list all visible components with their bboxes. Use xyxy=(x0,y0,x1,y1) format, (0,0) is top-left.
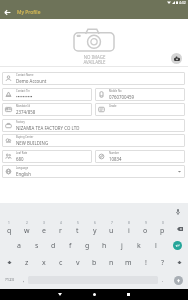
staticText: 3 xyxy=(43,221,45,225)
staticText: k xyxy=(137,241,141,251)
button[interactable]: j xyxy=(113,237,130,254)
button[interactable]: Home xyxy=(77,289,111,300)
button[interactable]: 4 xyxy=(52,220,69,237)
button[interactable]: z xyxy=(18,254,35,271)
staticText: NEW BUILDING xyxy=(16,140,49,146)
button[interactable]: Voice input xyxy=(174,208,182,216)
staticText: d xyxy=(51,241,56,251)
button[interactable]: Mobile No xyxy=(95,88,185,101)
staticText: NO IMAGE AVAILABLE xyxy=(83,54,106,65)
staticText: Demo Account xyxy=(16,78,47,84)
button[interactable]: 0 xyxy=(154,220,171,237)
button[interactable]: ! xyxy=(137,254,154,271)
staticText: ?123 xyxy=(5,277,15,283)
button[interactable]: b xyxy=(86,254,103,271)
staticText: z xyxy=(25,258,29,268)
button[interactable]: 8 xyxy=(120,220,137,237)
staticText: 0760700459 xyxy=(109,94,135,100)
staticText: j xyxy=(121,241,123,251)
staticText: c xyxy=(59,258,63,268)
button[interactable]: Enter xyxy=(167,237,188,254)
button[interactable]: Delete xyxy=(171,254,188,271)
button[interactable]: Buying Center xyxy=(2,134,185,147)
staticText: ! xyxy=(145,258,147,268)
button[interactable]: 7 xyxy=(103,220,120,237)
button[interactable]: Shift xyxy=(0,254,18,271)
staticText: 2 xyxy=(26,221,28,225)
button[interactable]: Mandate Id xyxy=(2,103,92,116)
staticText: b xyxy=(92,258,97,268)
staticText: 0 xyxy=(162,221,164,225)
staticText: 5 xyxy=(77,221,79,225)
staticText: Language xyxy=(16,166,29,170)
staticText: 680 xyxy=(16,156,24,162)
button[interactable]: Back xyxy=(43,289,77,300)
staticText: h xyxy=(102,241,107,251)
button[interactable]: k xyxy=(130,237,147,254)
staticText: Buying Center xyxy=(16,135,34,139)
button[interactable]: Contact Name xyxy=(2,72,185,85)
staticText: NIZAMIA TEA FACTORY CO LTD xyxy=(16,125,80,131)
staticText: 4 xyxy=(60,221,62,225)
button[interactable]: Grade xyxy=(95,103,185,116)
button[interactable]: Factory xyxy=(2,119,185,132)
button[interactable]: Enter xyxy=(168,271,188,289)
button[interactable]: l xyxy=(147,237,164,254)
button[interactable]: 2 xyxy=(18,220,35,237)
staticText: 7 xyxy=(111,221,113,225)
button[interactable]: 9 xyxy=(137,220,154,237)
staticText: Contact Name xyxy=(16,73,34,77)
button[interactable]: Take photo xyxy=(171,53,182,64)
staticText: ? xyxy=(161,258,165,268)
staticText: 6 xyxy=(94,221,96,225)
staticText: 1 xyxy=(8,221,10,225)
staticText: w xyxy=(24,226,30,236)
button[interactable]: m xyxy=(120,254,137,271)
button[interactable]: c xyxy=(52,254,69,271)
staticText: e xyxy=(42,226,46,236)
button[interactable]: Recents xyxy=(111,289,145,300)
staticText: Number xyxy=(109,151,120,155)
button[interactable]: Contact Tin xyxy=(2,88,92,101)
staticText: My Profile xyxy=(17,9,41,16)
staticText: 4:32 xyxy=(179,0,186,5)
button[interactable]: Language xyxy=(2,165,185,178)
staticText: q xyxy=(7,226,12,236)
button[interactable]: n xyxy=(103,254,120,271)
button[interactable]: Back xyxy=(0,5,14,19)
staticText: f xyxy=(69,241,72,251)
button[interactable]: Backspace xyxy=(171,220,188,237)
staticText: u xyxy=(109,226,114,236)
staticText: g xyxy=(85,241,90,251)
staticText: 9 xyxy=(145,221,147,225)
staticText: r xyxy=(59,226,62,236)
button[interactable]: 5 xyxy=(69,220,86,237)
button[interactable]: h xyxy=(96,237,113,254)
button[interactable]: f xyxy=(62,237,79,254)
staticText: Grade xyxy=(109,104,117,108)
staticText: a xyxy=(17,241,21,251)
staticText: p xyxy=(160,226,165,236)
staticText: 8 xyxy=(128,221,130,225)
button[interactable]: ?123 xyxy=(0,271,20,289)
staticText: English xyxy=(16,171,31,177)
button[interactable]: 3 xyxy=(35,220,52,237)
button[interactable]: 6 xyxy=(86,220,103,237)
button[interactable]: v xyxy=(69,254,86,271)
button[interactable]: d xyxy=(45,237,62,254)
button[interactable]: ? xyxy=(154,254,171,271)
staticText: •••••••••• xyxy=(16,94,33,100)
button[interactable]: , xyxy=(20,271,28,289)
button[interactable]: g xyxy=(79,237,96,254)
staticText: , xyxy=(23,277,25,284)
staticText: s xyxy=(35,241,39,251)
button[interactable]: Number xyxy=(95,150,185,163)
button[interactable]: s xyxy=(28,237,45,254)
button[interactable]: a xyxy=(10,237,28,254)
button[interactable]: . xyxy=(158,271,168,289)
button[interactable]: x xyxy=(35,254,52,271)
button[interactable]: 1 xyxy=(0,220,18,237)
button[interactable]: Leaf Rate xyxy=(2,150,92,163)
staticText: 2374/858 xyxy=(16,109,36,115)
